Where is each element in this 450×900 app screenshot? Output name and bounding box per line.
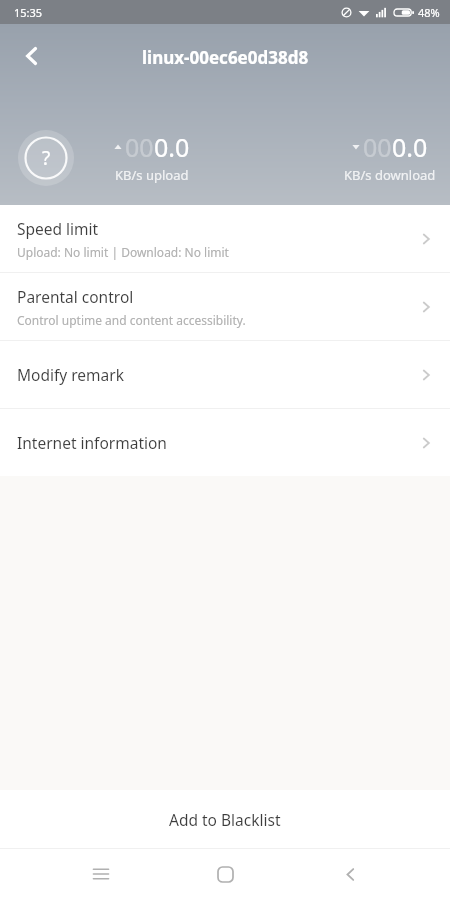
button[interactable]: Internet information (0, 409, 450, 476)
staticText: KB/s download (344, 166, 436, 184)
staticText: Modify remark (17, 364, 124, 385)
button[interactable]: Home (201, 850, 249, 898)
staticText: Parental control (17, 286, 134, 307)
staticText: Add to Blacklist (169, 809, 281, 830)
staticText: Control uptime and content accessibility… (17, 312, 246, 328)
staticText: 0.0 (154, 130, 190, 164)
staticText: Internet information (17, 432, 167, 453)
button[interactable]: Modify remark (0, 341, 450, 408)
staticText: KB/s upload (115, 166, 189, 184)
staticText: 0.0 (392, 130, 428, 164)
button[interactable]: Parental control (0, 273, 450, 340)
button[interactable]: Add to Blacklist (0, 790, 450, 848)
staticText: 15:35 (14, 5, 43, 20)
staticText: ? (42, 145, 51, 171)
button[interactable]: Speed limit (0, 205, 450, 272)
staticText: linux-00ec6e0d38d8 (142, 46, 309, 69)
staticText: 00 (363, 130, 392, 164)
staticText: 00 (125, 130, 154, 164)
staticText: Upload: No limit | Download: No limit (17, 244, 229, 260)
button[interactable]: Recent apps (77, 850, 125, 898)
button[interactable]: Help (18, 130, 74, 186)
staticText: 48% (418, 5, 440, 20)
button[interactable]: Back (326, 850, 374, 898)
button[interactable]: Back (8, 32, 56, 80)
staticText: Speed limit (17, 218, 99, 239)
